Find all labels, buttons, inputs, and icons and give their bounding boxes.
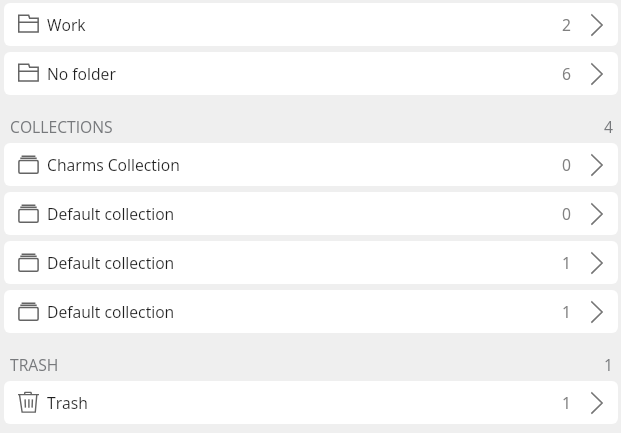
other: Open Work — [591, 14, 603, 36]
button[interactable]: Folder — [4, 3, 618, 46]
other: Open Trash — [591, 392, 603, 414]
staticText: 1 — [562, 252, 571, 273]
other: Collection — [18, 252, 39, 273]
staticText: 1 — [604, 354, 613, 375]
button[interactable]: Trash — [4, 381, 618, 424]
staticText: Work — [47, 14, 86, 35]
staticText: 6 — [562, 63, 571, 84]
staticText: COLLECTIONS — [10, 116, 113, 137]
other: Open Charms Collection — [591, 154, 603, 176]
other: Folder — [18, 63, 39, 84]
staticText: Default collection — [47, 252, 175, 273]
other: Collection — [18, 154, 39, 175]
button[interactable]: Collection — [4, 290, 618, 333]
other: Collection — [18, 301, 39, 322]
other: Collection — [18, 203, 39, 224]
staticText: TRASH — [10, 354, 59, 375]
button[interactable]: Collection — [4, 192, 618, 235]
other: Open No folder — [591, 63, 603, 85]
staticText: No folder — [47, 63, 116, 84]
other: Open Default collection — [591, 301, 603, 323]
staticText: 1 — [562, 301, 571, 322]
staticText: Charms Collection — [47, 154, 180, 175]
staticText: Default collection — [47, 301, 175, 322]
staticText: Trash — [47, 392, 88, 413]
staticText: 0 — [562, 154, 571, 175]
other: Open Default collection — [591, 203, 603, 225]
staticText: 1 — [562, 392, 571, 413]
other: Open Default collection — [591, 252, 603, 274]
staticText: Default collection — [47, 203, 175, 224]
staticText: 0 — [562, 203, 571, 224]
other: Folder — [18, 14, 39, 35]
button[interactable]: Folder — [4, 52, 618, 95]
button[interactable]: Collection — [4, 241, 618, 284]
staticText: 2 — [562, 14, 571, 35]
button[interactable]: Collection — [4, 143, 618, 186]
staticText: 4 — [604, 116, 613, 137]
other: Trash — [18, 392, 39, 413]
